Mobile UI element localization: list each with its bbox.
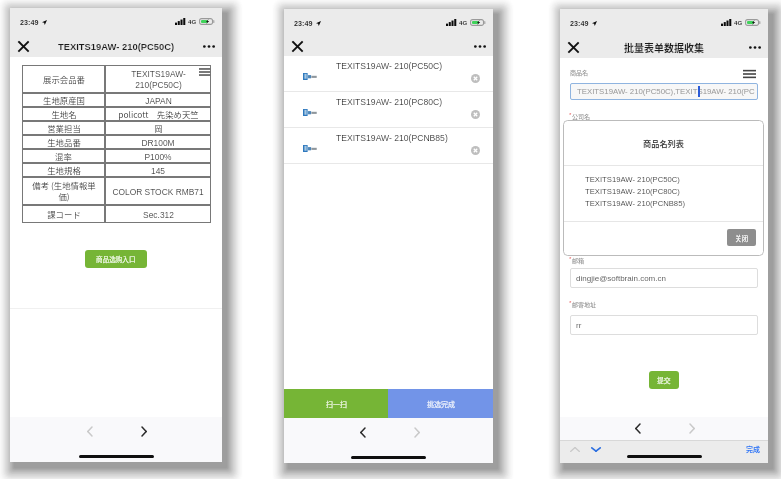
button[interactable]: Menu (739, 67, 759, 81)
staticText: 关闭 (735, 233, 749, 243)
button[interactable]: Remove (468, 107, 482, 121)
staticText: TEXITS19AW- 210(PC50C) (131, 69, 186, 90)
staticText: TEXITS19AW- 210(PC50C) (58, 41, 175, 52)
staticText: 岡 (154, 122, 163, 134)
staticText: 提交 (657, 375, 671, 385)
staticText: 完成 (746, 444, 760, 454)
staticText: 145 (151, 166, 165, 175)
staticText: * (569, 256, 572, 263)
button[interactable]: Next field (587, 441, 605, 457)
staticText: 邮寄地址 (572, 300, 597, 309)
staticText: 商品名列表 (643, 137, 684, 149)
staticText: TEXITS19AW- 210(PCNB85) (585, 199, 685, 208)
staticText: Sec.312 (143, 210, 174, 219)
staticText: 批量表单数据收集 (624, 40, 704, 54)
staticText: 邮箱 (572, 256, 585, 265)
staticText: 備考 (生地情報単 価) (32, 179, 96, 203)
staticText: 課コード (47, 208, 81, 220)
button[interactable]: 商品选购入口 (85, 250, 147, 268)
staticText: TEXITS19AW- 210(PC50C) (336, 61, 443, 71)
button[interactable]: 关闭 (727, 229, 756, 246)
button[interactable]: TEXITS19AW- 210(PC50C) (284, 56, 493, 92)
button[interactable]: Back (76, 417, 102, 445)
button[interactable]: Menu (199, 67, 211, 77)
button[interactable]: rr (570, 315, 758, 335)
staticText: 4G (459, 19, 468, 26)
staticText: TEXITS19AW- 210(PC50C) (585, 175, 680, 184)
staticText: 展示会品番 (43, 73, 85, 85)
staticText: 公司名 (572, 112, 591, 121)
staticText: TEXITS19AW- 210(PCNB85) (336, 133, 448, 143)
staticText: 生地原産国 (43, 94, 85, 106)
staticText: P100% (144, 152, 172, 161)
staticText: 23:49 (20, 18, 39, 26)
staticText: 生地規格 (47, 164, 81, 176)
staticText: JAPAN (145, 96, 172, 105)
staticText: 23:49 (294, 19, 313, 27)
staticText: 生地品番 (47, 136, 81, 148)
button[interactable]: 完成 (746, 444, 768, 454)
staticText: DR100M (141, 138, 175, 147)
button[interactable]: Back (624, 417, 650, 440)
staticText: dingjie@softbrain.com.cn (576, 274, 666, 283)
button[interactable]: Previous field (566, 441, 584, 457)
button[interactable] (570, 121, 758, 141)
staticText: 扫一扫 (326, 399, 347, 409)
button[interactable]: Close (10, 35, 40, 57)
staticText: 混率 (55, 150, 72, 162)
staticText: TEXITS19AW- 210(PC80C) (336, 97, 443, 107)
staticText: 商品名 (570, 68, 589, 77)
staticText: COLOR STOCK RMB71 (112, 187, 204, 196)
button[interactable]: More options (192, 35, 222, 57)
button[interactable]: Forward (404, 418, 430, 446)
button[interactable]: TEXITS19AW- 210(PCNB85) (284, 128, 493, 164)
button[interactable]: dingjie@softbrain.com.cn (570, 268, 758, 288)
button[interactable]: Close (284, 36, 314, 56)
button[interactable]: Remove (468, 143, 482, 157)
button[interactable]: Back (349, 418, 375, 446)
button[interactable]: TEXITS19AW- 210(PC80C) (284, 92, 493, 128)
staticText: 挑选完成 (427, 399, 455, 409)
staticText: policott 先染め天竺 (118, 108, 199, 120)
staticText: rr (576, 321, 582, 330)
button[interactable]: 扫一扫 (284, 389, 388, 418)
button[interactable]: TEXITS19AW- 210(PC50C),TEXITS19AW- 210(P… (570, 83, 758, 100)
button[interactable]: Remove (468, 71, 482, 85)
button[interactable]: 提交 (649, 371, 679, 389)
staticText: 生地名 (51, 108, 77, 120)
staticText: * (569, 112, 572, 119)
staticText: TEXITS19AW- 210(PC50C),TEXITS19AW- 210(P… (577, 87, 755, 96)
button[interactable]: Forward (131, 417, 157, 445)
button[interactable]: More options (738, 36, 768, 58)
button[interactable]: Forward (679, 417, 705, 440)
staticText: 23:49 (570, 19, 589, 27)
staticText: 4G (188, 18, 197, 25)
button[interactable]: More options (463, 36, 493, 56)
staticText: * (569, 300, 572, 307)
button[interactable]: 挑选完成 (388, 389, 493, 418)
button[interactable]: Close (560, 36, 590, 58)
staticText: 営業担当 (47, 122, 81, 134)
staticText: 商品选购入口 (96, 254, 136, 264)
staticText: 4G (734, 19, 743, 26)
staticText: TEXITS19AW- 210(PC80C) (585, 187, 680, 196)
